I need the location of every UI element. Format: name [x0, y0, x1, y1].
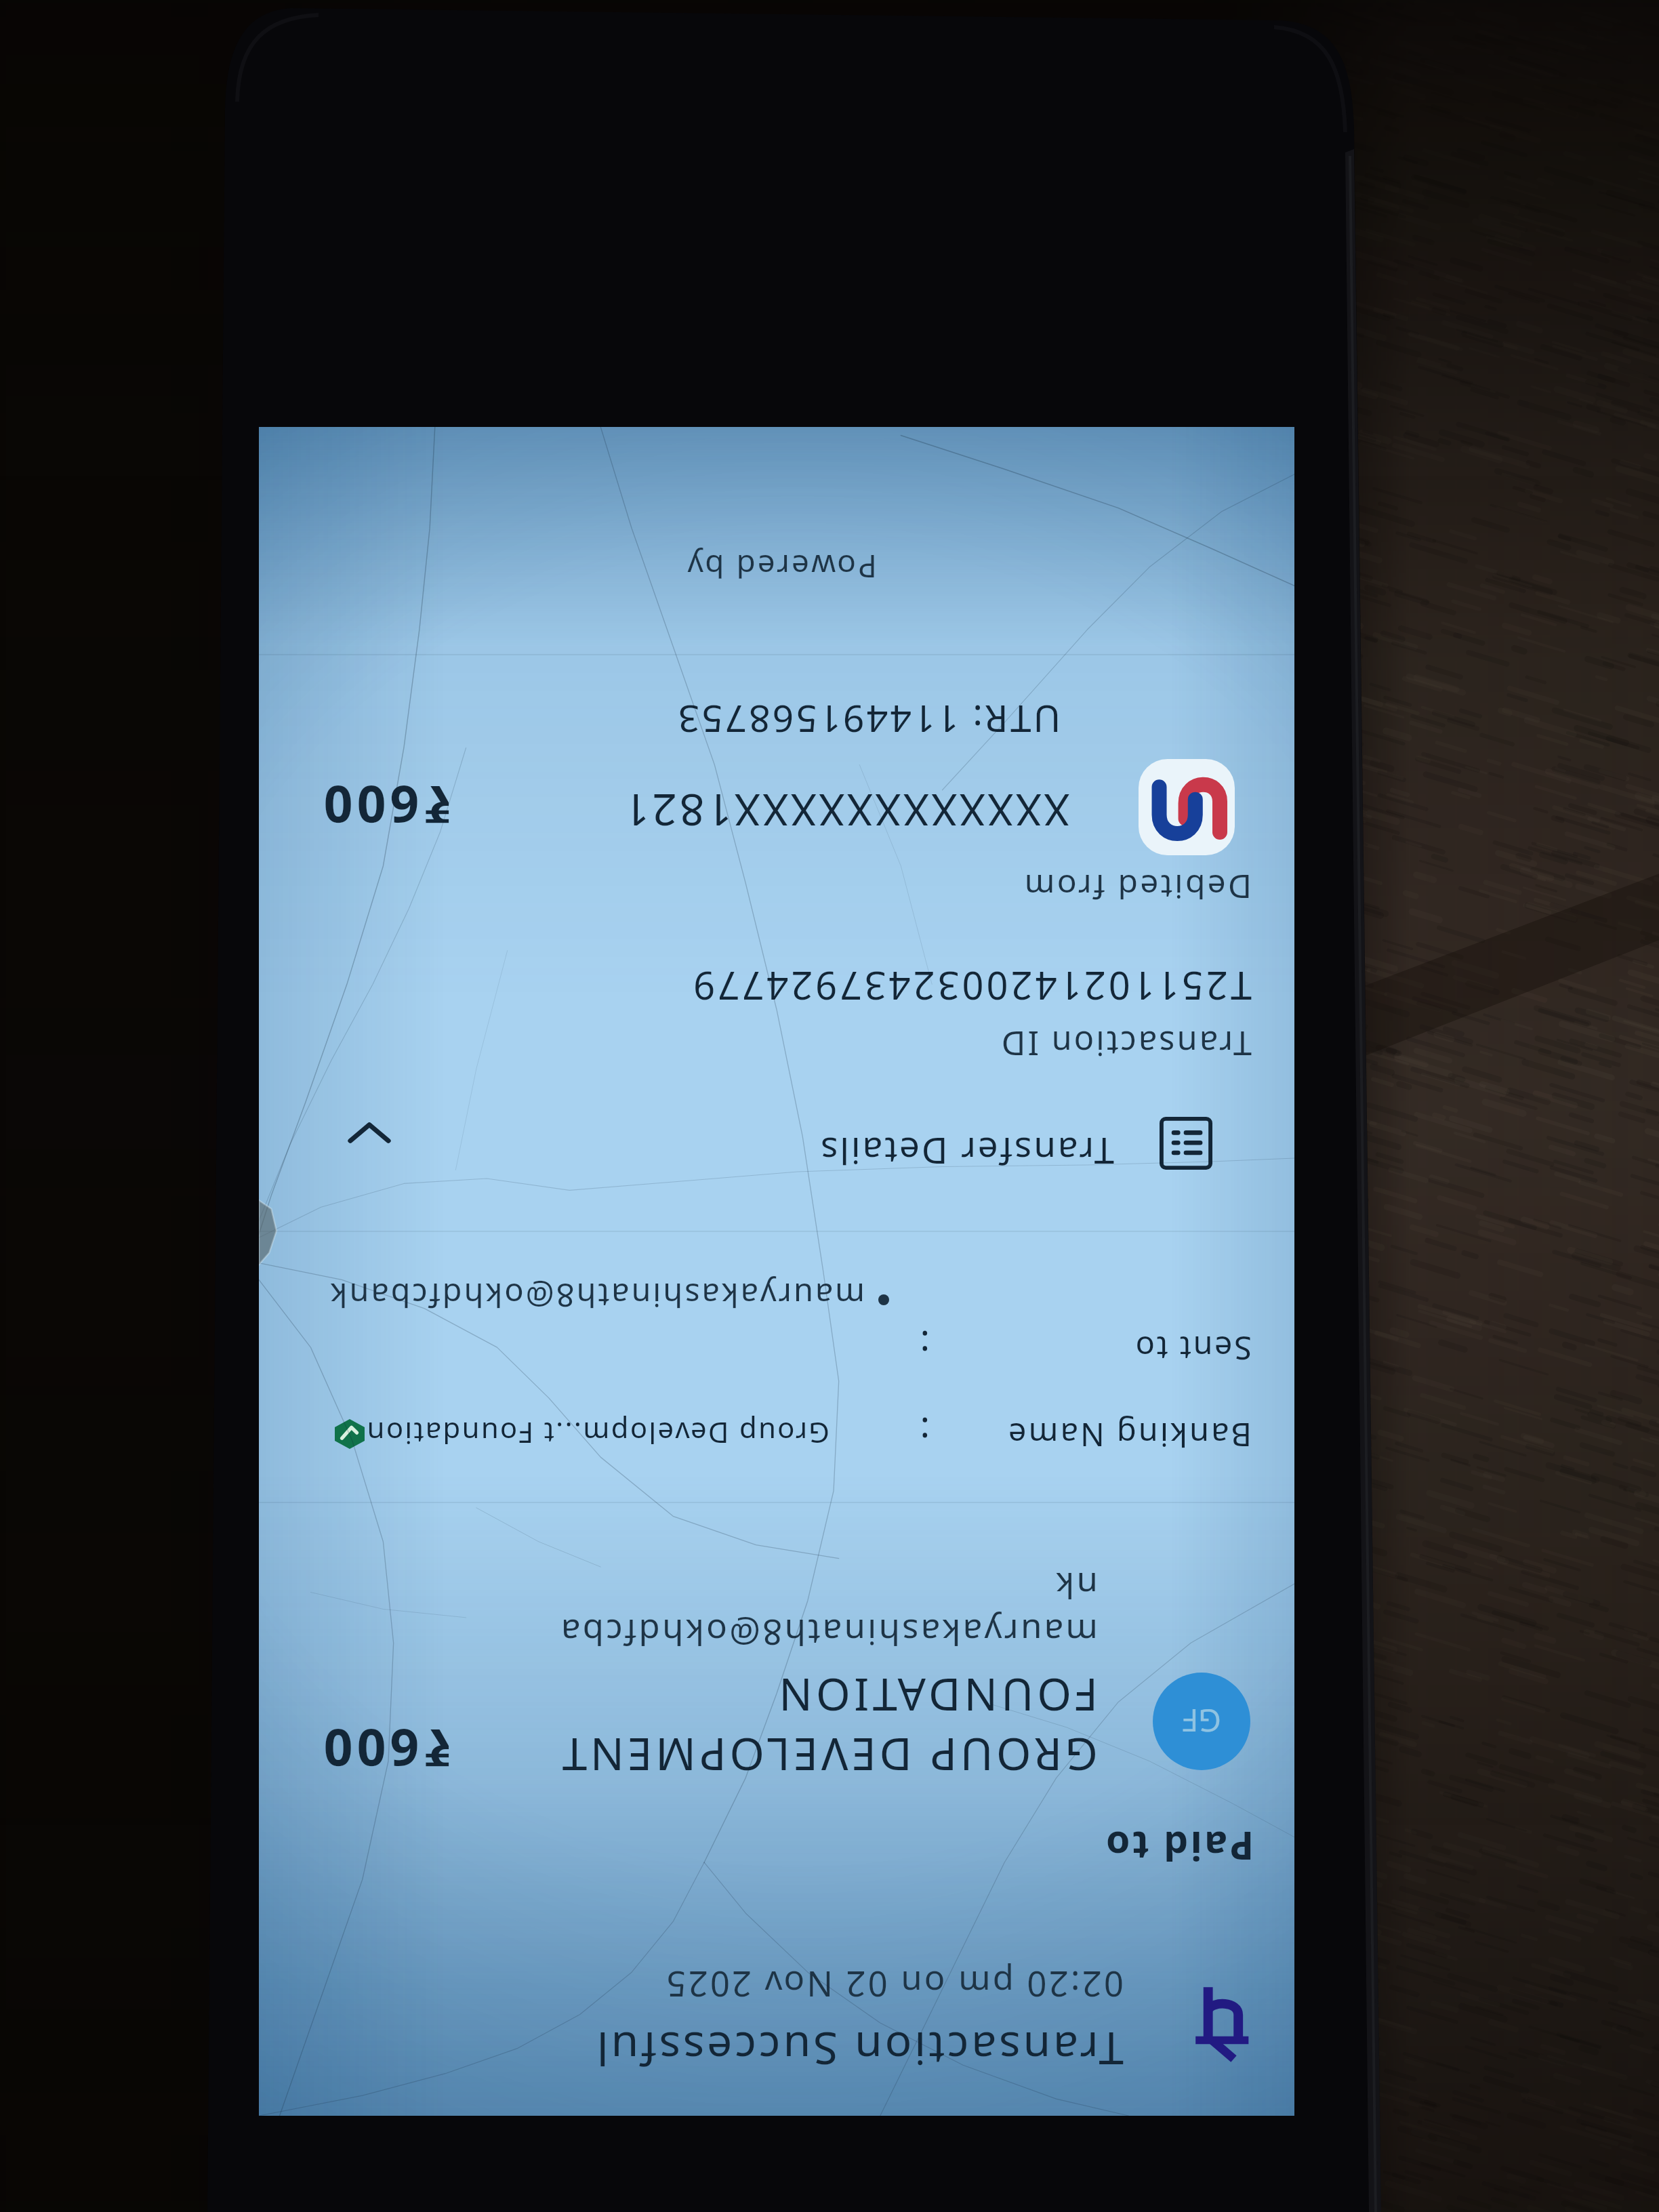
- staticText: T2511021420032437924779: [691, 961, 1252, 1012]
- staticText: Banking Name: [1006, 1414, 1252, 1457]
- staticText: ₹600: [319, 771, 452, 840]
- staticText: ₹600: [319, 1715, 452, 1784]
- staticText: Group Developm...t Foundation: [365, 1414, 829, 1453]
- button[interactable]: Transfer Details: [259, 1072, 1294, 1208]
- button[interactable]: Banking name and Sent to details: [259, 1255, 1294, 1479]
- button[interactable]: GF: [1153, 1673, 1250, 1770]
- staticText: Powered by: [685, 546, 877, 588]
- staticText: :: [920, 1407, 930, 1457]
- staticText: :: [920, 1320, 930, 1370]
- staticText: mauryakashinath8@okhdfcbank: [328, 1274, 865, 1317]
- staticText: Transfer Details: [819, 1128, 1114, 1176]
- staticText: XXXXXXXXXXXX1821: [621, 781, 1069, 840]
- staticText: GF: [1182, 1700, 1221, 1742]
- other: Expand: [344, 1109, 394, 1159]
- staticText: nk: [1053, 1563, 1098, 1610]
- staticText: Transaction Successful: [594, 2020, 1124, 2081]
- staticText: GROUP DEVELOPMENT: [558, 1725, 1098, 1786]
- staticText: 02:20 pm on 02 Nov 2025: [664, 1962, 1124, 2009]
- staticText: mauryakashinath8@okhdfcba: [558, 1610, 1098, 1657]
- other: PhonePe: [1193, 1986, 1250, 2059]
- staticText: Sent to: [1133, 1327, 1252, 1370]
- staticText: Transaction ID: [999, 1021, 1252, 1067]
- button[interactable]: UTR 114491568753: [259, 665, 1294, 754]
- staticText: FOUNDATION: [775, 1665, 1098, 1725]
- other: Transfer details: [1160, 1117, 1212, 1170]
- button[interactable]: Transaction ID T2511021420032437924779: [259, 943, 1294, 1072]
- staticText: Debited from: [1022, 865, 1252, 909]
- staticText: Paid to: [1103, 1820, 1254, 1873]
- button[interactable]: Paid to GROUP DEVELOPMENT FOUNDATION, ₹6…: [259, 1513, 1294, 1797]
- button[interactable]: Debited from XXXXXXXXXXXX1821, ₹600: [259, 754, 1294, 923]
- staticText: UTR: 114491568753: [676, 695, 1061, 745]
